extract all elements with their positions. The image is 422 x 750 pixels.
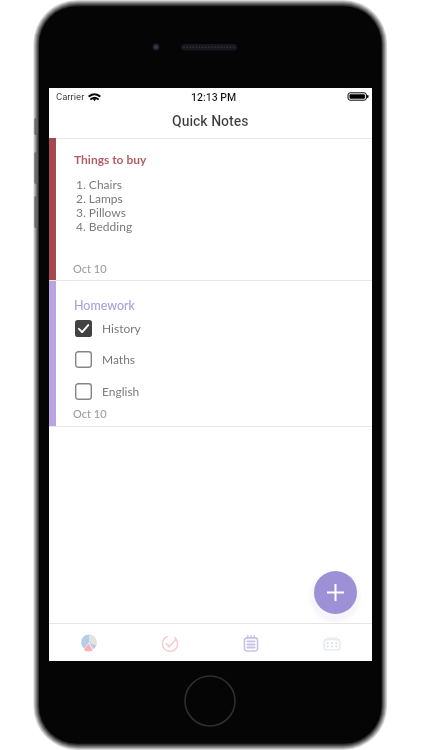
button[interactable]: Add note <box>314 571 357 614</box>
button[interactable]: Statistics <box>49 624 129 661</box>
button[interactable]: English <box>49 380 372 402</box>
staticText: 1. Chairs <box>76 177 122 191</box>
button[interactable]: Calendar <box>291 624 372 661</box>
button[interactable]: Maths <box>49 348 372 370</box>
staticText: Maths <box>102 352 136 366</box>
button[interactable]: Homework <box>49 281 372 426</box>
staticText: Oct 10 <box>73 407 107 420</box>
staticText: Quick Notes <box>172 113 249 129</box>
button[interactable]: History <box>49 317 372 339</box>
staticText: Oct 10 <box>73 262 107 275</box>
staticText: 2. Lamps <box>76 191 123 205</box>
staticText: English <box>102 384 140 398</box>
button[interactable]: Tasks <box>129 624 210 661</box>
staticText: History <box>102 321 141 335</box>
staticText: 3. Pillows <box>76 205 126 219</box>
button[interactable]: Things to buy <box>49 138 372 280</box>
staticText: Homework <box>74 298 135 313</box>
staticText: 12:13 PM <box>191 91 237 103</box>
staticText: Things to buy <box>74 152 147 166</box>
staticText: 4. Bedding <box>76 219 133 233</box>
button[interactable]: Notes <box>210 624 291 661</box>
staticText: Carrier <box>56 91 85 102</box>
